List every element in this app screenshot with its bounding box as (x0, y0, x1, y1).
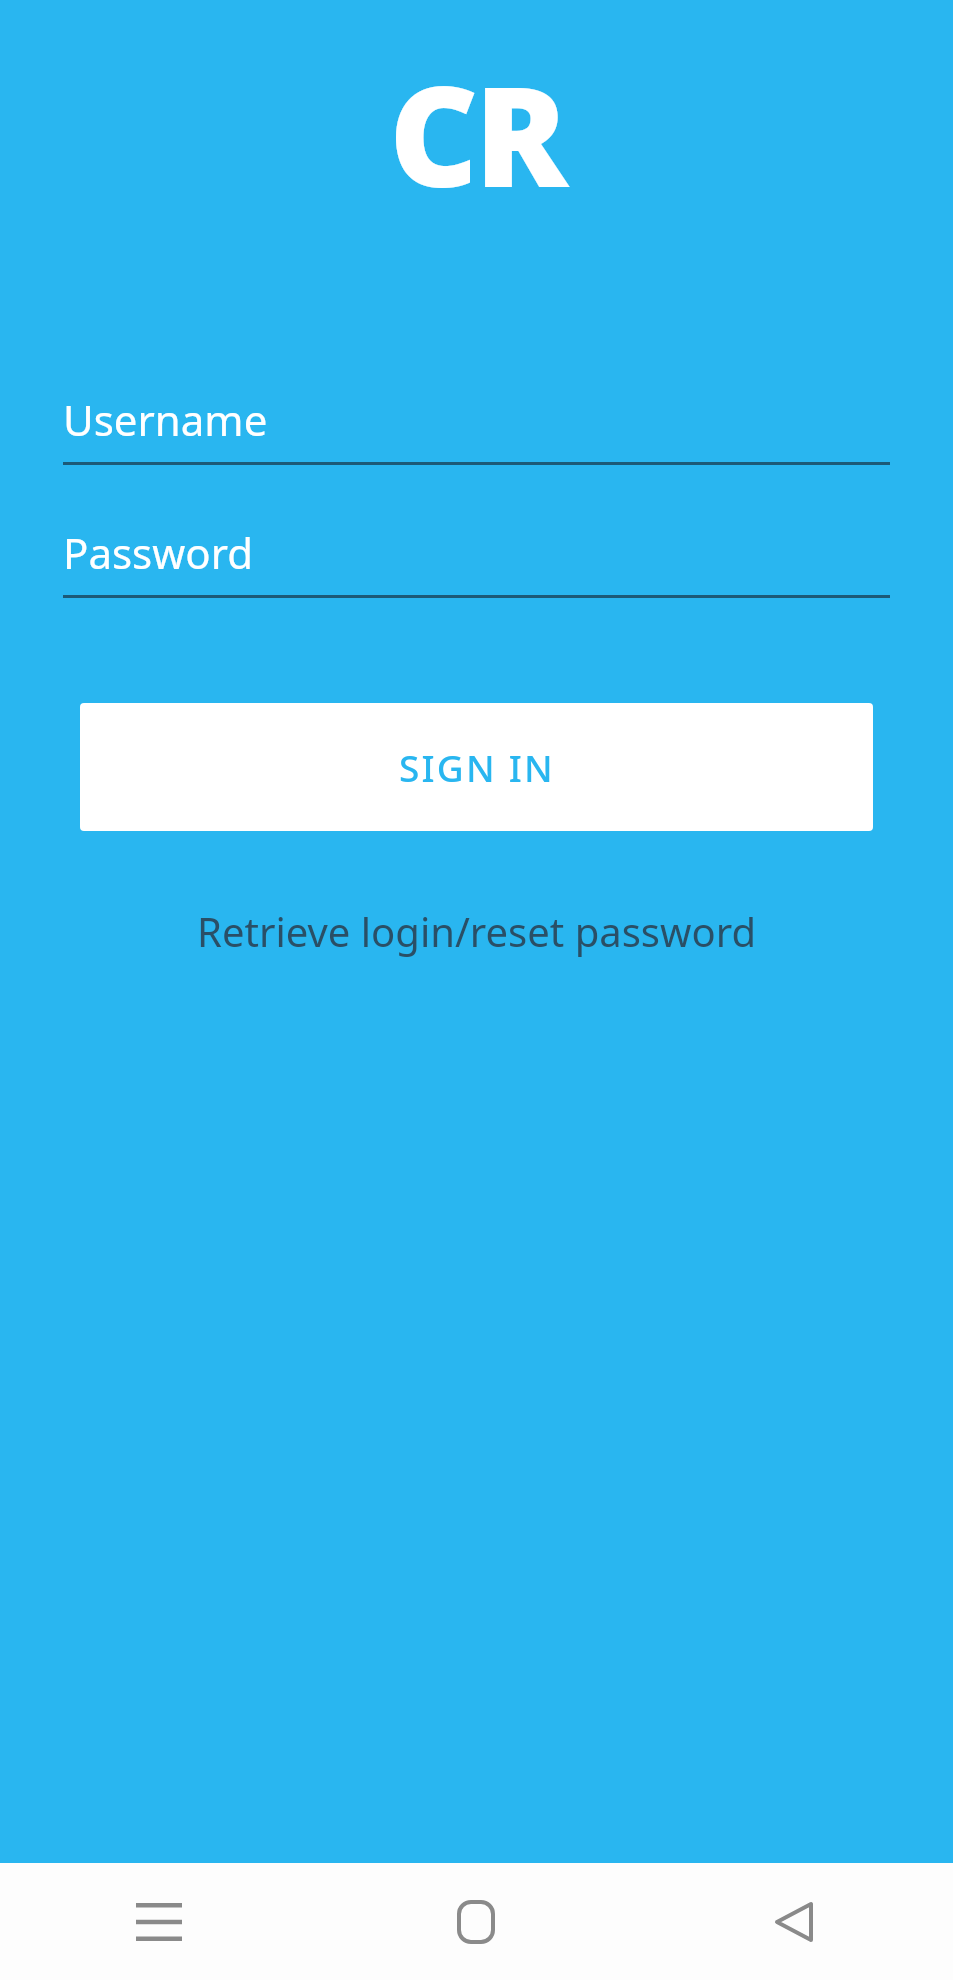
staticText: Password (63, 524, 253, 581)
staticText: SIGN IN (399, 742, 555, 792)
button[interactable]: Recent apps (0, 1863, 317, 1980)
button[interactable]: Username (63, 390, 890, 465)
button[interactable]: Home (317, 1863, 635, 1980)
staticText: CR (389, 39, 564, 227)
staticText: Retrieve login/reset password (197, 904, 756, 958)
button[interactable]: SIGN IN (80, 703, 873, 831)
button[interactable]: Password (63, 523, 890, 598)
other: CR logo (389, 39, 564, 227)
button[interactable]: Retrieve login/reset password (173, 894, 780, 968)
button[interactable]: Back (635, 1863, 953, 1980)
staticText: Username (63, 391, 268, 448)
